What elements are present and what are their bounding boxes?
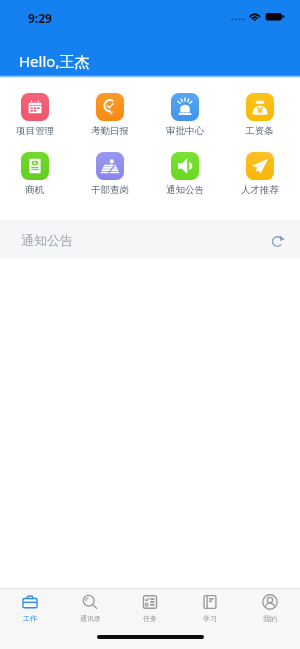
button[interactable]: 工资条	[222, 93, 297, 137]
staticText: Hello,王杰	[19, 51, 90, 71]
staticText: 9:29	[28, 10, 52, 26]
button[interactable]: 我的	[240, 594, 300, 623]
button[interactable]: 学习	[180, 594, 240, 623]
other: Refresh	[270, 232, 286, 248]
staticText: 人才推荐	[241, 184, 279, 196]
button[interactable]: 工作	[0, 594, 60, 623]
staticText: 考勤日报	[91, 125, 129, 137]
staticText: 干部查岗	[91, 184, 129, 196]
staticText: 审批中心	[166, 125, 204, 137]
button[interactable]: 通讯录	[60, 594, 120, 623]
button[interactable]: 干部查岗	[72, 152, 147, 196]
button[interactable]: 任务	[120, 594, 180, 623]
button[interactable]: 通知公告	[147, 152, 222, 196]
staticText: 工作	[23, 614, 37, 623]
staticText: 通知公告	[21, 232, 73, 248]
button[interactable]: 考勤日报	[72, 93, 147, 137]
button[interactable]: 项目管理	[0, 93, 72, 137]
staticText: 通知公告	[166, 184, 204, 196]
staticText: 我的	[263, 614, 277, 623]
staticText: 通讯录	[80, 614, 101, 623]
staticText: 学习	[203, 614, 217, 623]
staticText: 工资条	[245, 125, 274, 137]
button[interactable]: 商机	[0, 152, 72, 196]
button[interactable]: 审批中心	[147, 93, 222, 137]
staticText: 项目管理	[16, 125, 54, 137]
staticText: 任务	[143, 614, 157, 623]
button[interactable]: 通知公告	[0, 220, 300, 259]
button[interactable]: 人才推荐	[222, 152, 297, 196]
staticText: 商机	[25, 184, 44, 196]
